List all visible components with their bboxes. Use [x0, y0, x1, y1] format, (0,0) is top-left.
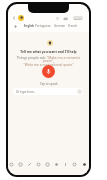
button[interactable]: Tap to speak [42, 65, 55, 78]
button[interactable]: Settings [72, 162, 77, 167]
button[interactable]: French [68, 23, 78, 29]
staticText: English [24, 24, 35, 28]
button[interactable]: Portuguese [35, 23, 51, 29]
button[interactable]: Clipboard [36, 162, 41, 167]
button[interactable]: Menu [82, 162, 87, 167]
staticText: Or type here... [16, 90, 37, 94]
button[interactable]: Translate [45, 162, 50, 167]
button[interactable]: Or type here... [13, 88, 83, 95]
staticText: Tap to speak [40, 82, 58, 86]
button[interactable]: Add language [12, 23, 18, 29]
button[interactable]: English [24, 23, 35, 29]
button[interactable]: German [54, 23, 66, 29]
button[interactable]: Voice [54, 162, 59, 167]
button[interactable]: Emoji [9, 162, 14, 167]
button[interactable]: Back [10, 14, 18, 22]
button[interactable]: GIF [18, 162, 23, 167]
button[interactable]: App logo [18, 15, 24, 21]
staticText: Things people ask: "Make me a romantic p… [11, 55, 86, 67]
button[interactable]: Upgrade to Pro [73, 16, 83, 20]
button[interactable]: Theme [63, 162, 68, 167]
staticText: German [54, 24, 66, 28]
staticText: Tell me what you want and I'll help [20, 50, 77, 54]
staticText: Go Pro [74, 17, 82, 20]
button[interactable]: Sticker [27, 162, 32, 167]
staticText: French [68, 24, 78, 28]
staticText: Portuguese [35, 24, 51, 28]
